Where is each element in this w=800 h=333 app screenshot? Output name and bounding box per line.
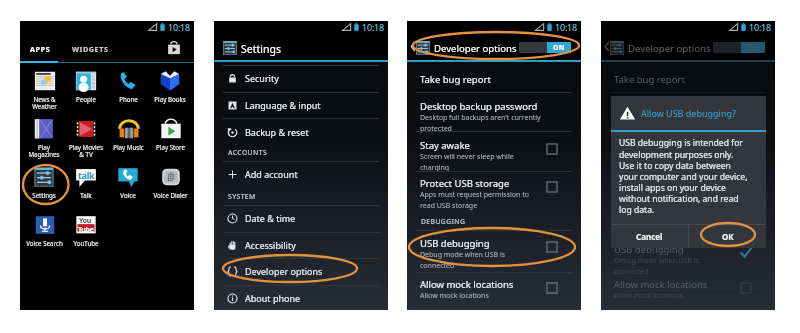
- staticText: Apps must request permission to read USB…: [420, 190, 529, 210]
- staticText: APPS: [30, 44, 51, 54]
- button[interactable]: Play Magazines: [23, 117, 65, 161]
- button[interactable]: USB debugging: [407, 237, 581, 270]
- staticText: Settings: [32, 191, 56, 199]
- staticText: YouTube: [73, 239, 99, 247]
- staticText: Add account: [245, 168, 298, 180]
- button[interactable]: YouTube: [65, 213, 107, 257]
- staticText: Date & time: [245, 212, 296, 224]
- button[interactable]: Take bug report: [601, 73, 775, 86]
- button[interactable]: Allow mock locations: [407, 278, 581, 301]
- button[interactable]: Play Store: [166, 40, 182, 56]
- staticText: News & Weather: [32, 95, 57, 111]
- staticText: Desktop backup password: [420, 100, 538, 113]
- staticText: USB debugging: [420, 237, 490, 250]
- staticText: ACCOUNTS: [228, 148, 268, 157]
- staticText: You: [79, 216, 92, 226]
- staticText: Tube: [78, 225, 94, 235]
- staticText: USB debugging is intended for developmen…: [619, 137, 748, 215]
- button[interactable]: Protect USB storage: [407, 177, 581, 210]
- staticText: Developer options: [245, 265, 323, 277]
- button[interactable]: OK: [689, 225, 766, 248]
- button[interactable]: Talk: [65, 165, 107, 209]
- staticText: Stay awake: [420, 139, 470, 152]
- button[interactable]: Phone: [107, 69, 149, 113]
- button[interactable]: Developer options: [214, 258, 388, 284]
- button[interactable]: Voice: [107, 165, 149, 209]
- staticText: Developer options: [628, 42, 711, 55]
- staticText: 10:18: [168, 21, 191, 33]
- staticText: Allow mock locations: [420, 291, 489, 301]
- button[interactable]: People: [65, 69, 107, 113]
- staticText: Allow USB debugging?: [641, 107, 736, 119]
- button[interactable]: Desktop backup password: [407, 100, 581, 133]
- staticText: 10:18: [555, 21, 578, 33]
- staticText: Protect USB storage: [420, 177, 510, 190]
- staticText: About phone: [245, 292, 301, 304]
- staticText: Voice Search: [26, 239, 63, 247]
- button[interactable]: Allow mock locations: [601, 278, 775, 301]
- staticText: Play Store: [156, 143, 185, 151]
- staticText: Take bug report: [614, 73, 685, 86]
- button[interactable]: Language & input: [214, 92, 388, 118]
- staticText: Screen will never sleep while charging: [420, 152, 514, 172]
- staticText: Allow mock locations: [614, 291, 683, 301]
- button[interactable]: Play Music: [107, 117, 149, 161]
- staticText: Play Music: [113, 143, 144, 151]
- staticText: WIDGETS: [72, 44, 109, 54]
- staticText: Take bug report: [420, 73, 491, 86]
- button[interactable]: Play Books: [149, 69, 191, 113]
- staticText: ON: [747, 43, 759, 52]
- button[interactable]: Settings: [214, 33, 388, 60]
- staticText: Voice: [120, 191, 136, 199]
- staticText: SYSTEM: [228, 192, 256, 201]
- button[interactable]: Back: [408, 41, 417, 52]
- button[interactable]: USB debugging: [601, 243, 775, 276]
- staticText: Desktop full backups aren't currently pr…: [420, 113, 541, 133]
- button[interactable]: Back: [602, 41, 611, 52]
- staticText: Security: [245, 72, 279, 84]
- button[interactable]: Add account: [214, 161, 388, 187]
- button[interactable]: Take bug report: [407, 73, 581, 86]
- button[interactable]: About phone: [214, 285, 388, 311]
- staticText: Allow mock locations: [420, 278, 514, 291]
- button[interactable]: Security: [214, 65, 388, 91]
- staticText: Phone: [119, 95, 138, 103]
- staticText: Play Movies & TV: [69, 143, 103, 159]
- staticText: 10:18: [362, 21, 385, 33]
- button[interactable]: Developer options on/off: [519, 42, 571, 53]
- staticText: Allow mock locations: [614, 278, 708, 291]
- button[interactable]: Play Movies & TV: [65, 117, 107, 161]
- staticText: Cancel: [636, 231, 663, 242]
- button[interactable]: Voice Dialer: [149, 165, 191, 209]
- button[interactable]: Settings: [23, 165, 65, 209]
- button[interactable]: Accessibility: [214, 232, 388, 258]
- staticText: Debug mode when USB is connected: [614, 256, 700, 276]
- staticText: Voice Dialer: [153, 191, 188, 199]
- staticText: USB debugging: [614, 243, 684, 256]
- staticText: Debug mode when USB is connected: [420, 250, 506, 270]
- button[interactable]: Backup & reset: [214, 119, 388, 145]
- staticText: Talk: [80, 191, 92, 199]
- staticText: Play Books: [154, 95, 186, 103]
- staticText: Backup & reset: [245, 126, 309, 138]
- button[interactable]: Date & time: [214, 205, 388, 231]
- staticText: DEBUGGING: [421, 217, 466, 226]
- staticText: Play Magazines: [28, 143, 60, 159]
- button[interactable]: News & Weather: [23, 69, 65, 113]
- button[interactable]: Stay awake: [407, 139, 581, 172]
- staticText: People: [76, 95, 96, 103]
- staticText: talk: [78, 169, 95, 182]
- staticText: Developer options: [434, 42, 517, 55]
- staticText: Language & input: [245, 99, 321, 111]
- staticText: ON: [553, 43, 565, 52]
- staticText: Settings: [241, 42, 281, 56]
- staticText: 10:18: [749, 21, 772, 33]
- button[interactable]: Cancel: [611, 225, 688, 248]
- button[interactable]: Play Store: [149, 117, 191, 161]
- staticText: Accessibility: [245, 239, 296, 251]
- staticText: OK: [722, 231, 734, 242]
- button[interactable]: Voice Search: [23, 213, 65, 257]
- button[interactable]: Developer options on/off: [713, 42, 765, 53]
